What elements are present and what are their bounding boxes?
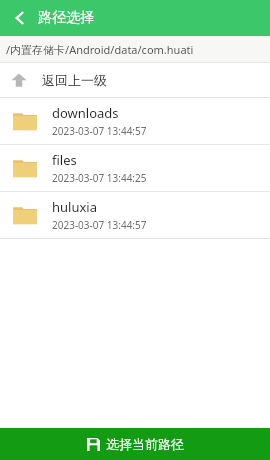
button[interactable]: 返回上一级 <box>0 63 270 97</box>
staticText: 2023-03-07 13:44:25 <box>52 171 147 185</box>
staticText: 路径选择 <box>38 9 94 27</box>
staticText: huluxia <box>52 198 97 216</box>
staticText: 2023-03-07 13:44:57 <box>52 124 147 138</box>
staticText: /内置存储卡/Android/data/com.huati <box>6 42 194 57</box>
button[interactable]: huluxia <box>0 192 270 238</box>
button[interactable]: downloads <box>0 98 270 144</box>
staticText: 2023-03-07 13:44:57 <box>52 218 147 232</box>
button[interactable]: Back <box>6 4 34 32</box>
staticText: 返回上一级 <box>42 72 107 88</box>
staticText: 选择当前路径 <box>106 436 184 452</box>
button[interactable]: files <box>0 145 270 191</box>
staticText: downloads <box>52 104 119 122</box>
button[interactable]: 选择当前路径 <box>0 428 270 460</box>
staticText: files <box>52 151 77 169</box>
